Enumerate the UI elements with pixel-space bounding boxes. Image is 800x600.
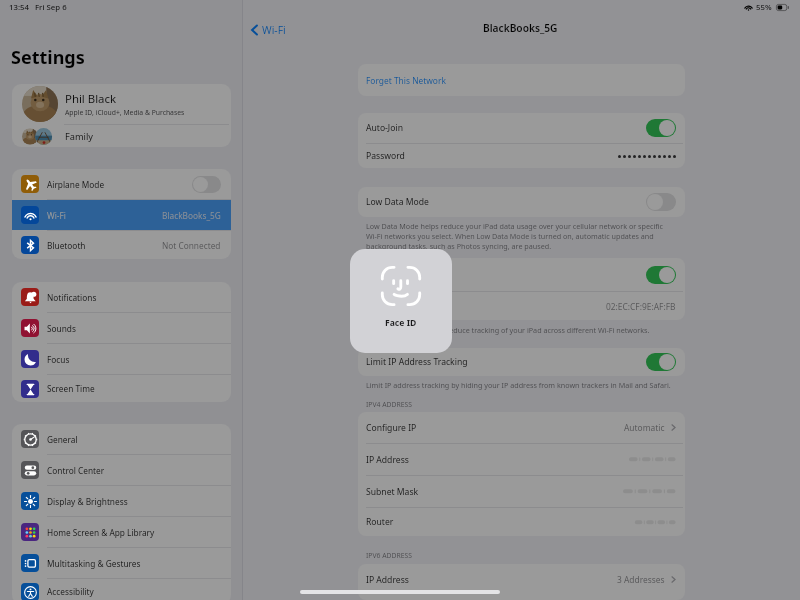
button[interactable]: Phil Black xyxy=(12,84,231,124)
button[interactable]: Multitasking & Gestures xyxy=(12,548,231,578)
staticText: Wi-Fi Address xyxy=(366,300,421,312)
button[interactable]: Notifications xyxy=(12,282,231,312)
staticText: Password xyxy=(366,150,405,162)
button[interactable]: Airplane Mode xyxy=(12,169,231,199)
staticText: Private Wi-Fi Address xyxy=(366,269,451,281)
button[interactable]: Forget This Network xyxy=(358,64,685,96)
staticText: Limit IP Address Tracking xyxy=(366,356,468,368)
button[interactable]: IP Address xyxy=(358,564,685,595)
staticText: Wi-Fi xyxy=(47,210,66,221)
staticText: Not Connected xyxy=(162,240,221,251)
staticText: Family xyxy=(65,130,93,143)
button[interactable]: Subnet Mask xyxy=(358,476,685,507)
staticText: 55% xyxy=(756,2,772,13)
staticText: IPV6 ADDRESS xyxy=(366,551,412,560)
button[interactable]: Screen Time xyxy=(12,375,231,402)
button[interactable]: Focus xyxy=(12,344,231,374)
button[interactable]: Wi-Fi xyxy=(249,21,288,39)
staticText: Face ID xyxy=(385,317,417,329)
staticText: Apple ID, iCloud+, Media & Purchases xyxy=(65,108,185,117)
button[interactable]: Bluetooth xyxy=(12,231,231,259)
staticText: Bluetooth xyxy=(47,240,86,251)
staticText: Settings xyxy=(11,45,85,70)
staticText: 3 Addresses xyxy=(617,574,665,585)
staticText: Phil Black xyxy=(65,91,117,107)
button[interactable]: Limit IP Address Tracking xyxy=(358,348,685,376)
staticText: Screen Time xyxy=(47,383,95,394)
button[interactable]: Configure IP xyxy=(358,412,685,443)
staticText: Low Data Mode helps reduce your iPad dat… xyxy=(366,221,668,251)
staticText: Configure IP xyxy=(366,422,417,434)
staticText: Subnet Mask xyxy=(366,486,419,498)
button[interactable]: Switch on xyxy=(646,266,676,284)
button[interactable]: Switch on xyxy=(646,119,676,137)
button[interactable]: Home Screen & App Library xyxy=(12,517,231,547)
staticText: Auto-Join xyxy=(366,122,403,134)
staticText: IP Address xyxy=(366,454,409,466)
button[interactable]: Switch off xyxy=(192,176,221,193)
staticText: Multitasking & Gestures xyxy=(47,558,141,569)
button[interactable]: Wi-Fi xyxy=(12,200,231,230)
staticText: 13:54 xyxy=(9,2,29,13)
button[interactable]: Router xyxy=(358,508,685,536)
staticText: BlackBooks_5G xyxy=(162,210,221,221)
staticText: Router xyxy=(366,516,394,528)
staticText: Accessibility xyxy=(47,586,94,597)
button[interactable]: Switch off xyxy=(646,193,676,211)
staticText: Forget This Network xyxy=(366,75,446,86)
staticText: Home Screen & App Library xyxy=(47,527,155,538)
staticText: Control Center xyxy=(47,465,105,476)
staticText: Focus xyxy=(47,354,70,365)
button[interactable]: General xyxy=(12,424,231,454)
button[interactable]: Wi-Fi Address xyxy=(358,292,685,320)
staticText: Low Data Mode xyxy=(366,196,429,208)
button[interactable]: Accessibility xyxy=(12,579,231,600)
button[interactable]: Password xyxy=(358,144,685,168)
staticText: Airplane Mode xyxy=(47,179,105,190)
staticText: Automatic xyxy=(624,422,665,433)
button[interactable]: Switch on xyxy=(646,353,676,371)
staticText: 02:EC:CF:9E:AF:FB xyxy=(606,301,676,312)
staticText: IP Address xyxy=(366,574,409,586)
button[interactable]: Display & Brightness xyxy=(12,486,231,516)
staticText: Display & Brightness xyxy=(47,496,128,507)
staticText: A private address helps reduce tracking … xyxy=(366,325,650,335)
button[interactable]: IP Address xyxy=(358,444,685,475)
staticText: Sounds xyxy=(47,323,76,334)
staticText: BlackBooks_5G xyxy=(483,21,558,35)
button[interactable]: Control Center xyxy=(12,455,231,485)
staticText: IPV4 ADDRESS xyxy=(366,400,412,409)
button[interactable]: Low Data Mode xyxy=(358,187,685,217)
button[interactable]: Private Wi-Fi Address xyxy=(358,258,685,291)
staticText: General xyxy=(47,434,78,445)
button[interactable]: Sounds xyxy=(12,313,231,343)
staticText: Wi-Fi xyxy=(262,23,286,37)
button[interactable]: Auto-Join xyxy=(358,113,685,143)
button[interactable]: Family xyxy=(12,125,231,147)
staticText: Notifications xyxy=(47,292,97,303)
staticText: Limit IP address tracking by hiding your… xyxy=(366,380,671,390)
staticText: Fri Sep 6 xyxy=(35,2,67,13)
other: Face ID authentication xyxy=(350,249,452,353)
